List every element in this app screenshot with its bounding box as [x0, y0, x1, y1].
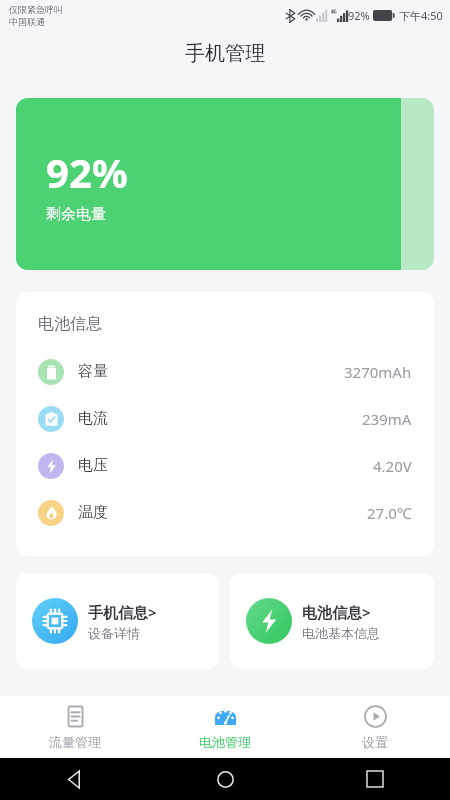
staticText: 电池信息 — [38, 314, 102, 334]
button[interactable]: 手机信息> — [16, 573, 219, 669]
staticText: 电池基本信息 — [302, 625, 380, 641]
staticText: 手机管理 — [185, 41, 265, 66]
button[interactable]: 流量管理 — [0, 696, 150, 758]
button[interactable]: 温度 — [16, 489, 434, 536]
staticText: 92% — [46, 145, 128, 199]
button[interactable]: 92% — [16, 98, 434, 270]
button[interactable]: 电池管理 — [150, 696, 300, 758]
staticText: 电压 — [78, 456, 108, 475]
staticText: 电池管理 — [199, 734, 251, 750]
staticText: 92% — [348, 8, 370, 23]
staticText: 流量管理 — [49, 734, 101, 750]
staticText: 设备详情 — [88, 625, 140, 641]
button[interactable]: 电池信息> — [230, 573, 434, 669]
staticText: 仅限紧急呼叫 — [9, 4, 63, 15]
staticText: 27.0℃ — [367, 503, 412, 523]
button[interactable]: Back — [55, 759, 95, 799]
staticText: 剩余电量 — [46, 205, 106, 224]
staticText: 设置 — [362, 734, 388, 750]
button[interactable]: 设置 — [300, 696, 450, 758]
button[interactable]: Home — [205, 759, 245, 799]
staticText: 3270mAh — [344, 362, 412, 382]
staticText: 电池信息> — [302, 602, 371, 622]
staticText: 温度 — [78, 503, 108, 522]
button[interactable]: 容量 — [16, 348, 434, 395]
button[interactable]: 电压 — [16, 442, 434, 489]
staticText: 下午4:50 — [399, 8, 443, 23]
staticText: 239mA — [362, 409, 412, 429]
button[interactable]: Recents — [355, 759, 395, 799]
staticText: 容量 — [78, 362, 108, 381]
button[interactable]: 电流 — [16, 395, 434, 442]
staticText: 电流 — [78, 409, 108, 428]
staticText: 手机信息> — [88, 602, 157, 622]
staticText: 4.20V — [373, 456, 412, 476]
staticText: 中国联通 — [9, 16, 45, 27]
